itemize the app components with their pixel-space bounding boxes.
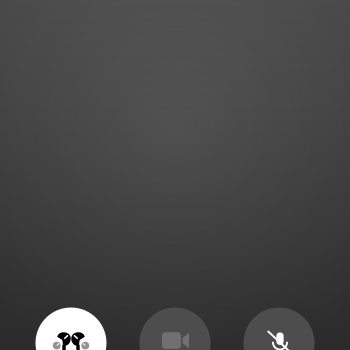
- button[interactable]: Camera: [139, 307, 210, 350]
- button[interactable]: Mute: [243, 307, 314, 350]
- button[interactable]: Audio output: [35, 307, 106, 350]
